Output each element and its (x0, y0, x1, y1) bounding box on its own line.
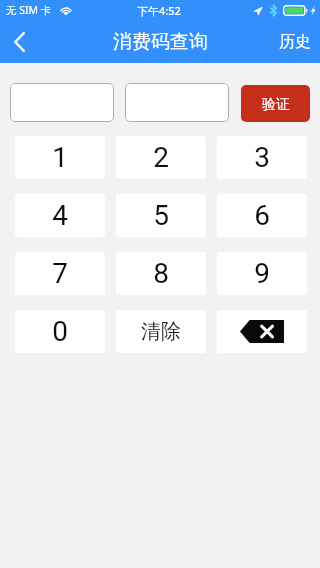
staticText: 6 (254, 199, 270, 232)
button[interactable]: 7 (15, 252, 105, 295)
staticText: 清除 (141, 319, 181, 344)
staticText: 9 (254, 257, 270, 290)
button[interactable]: 消费码输入框 (10, 83, 114, 122)
staticText: 0 (52, 315, 68, 348)
staticText: 2 (153, 141, 169, 174)
staticText: 8 (153, 257, 169, 290)
staticText: 4 (52, 199, 68, 232)
button[interactable]: 9 (217, 252, 307, 295)
button[interactable]: 0 (15, 310, 105, 353)
staticText: 3 (254, 141, 270, 174)
button[interactable]: 金额输入框 (125, 83, 229, 122)
staticText: 历史 (279, 32, 311, 52)
button[interactable]: 1 (15, 136, 105, 179)
button[interactable]: 验证 (241, 85, 310, 122)
staticText: 无 SIM 卡 (6, 3, 52, 17)
button[interactable]: 4 (15, 194, 105, 237)
staticText: 5 (153, 199, 169, 232)
button[interactable]: 删除 (217, 310, 307, 353)
button[interactable]: 3 (217, 136, 307, 179)
staticText: 下午4:52 (137, 3, 181, 18)
button[interactable]: 2 (116, 136, 206, 179)
staticText: 1 (52, 141, 68, 174)
button[interactable]: 6 (217, 194, 307, 237)
button[interactable]: 8 (116, 252, 206, 295)
button[interactable]: 清除 (116, 310, 206, 353)
button[interactable]: 5 (116, 194, 206, 237)
button[interactable]: 返回 (0, 20, 38, 63)
staticText: 消费码查询 (113, 30, 208, 54)
button[interactable]: 历史 (265, 20, 320, 63)
staticText: 7 (52, 257, 68, 290)
staticText: 验证 (262, 96, 290, 114)
